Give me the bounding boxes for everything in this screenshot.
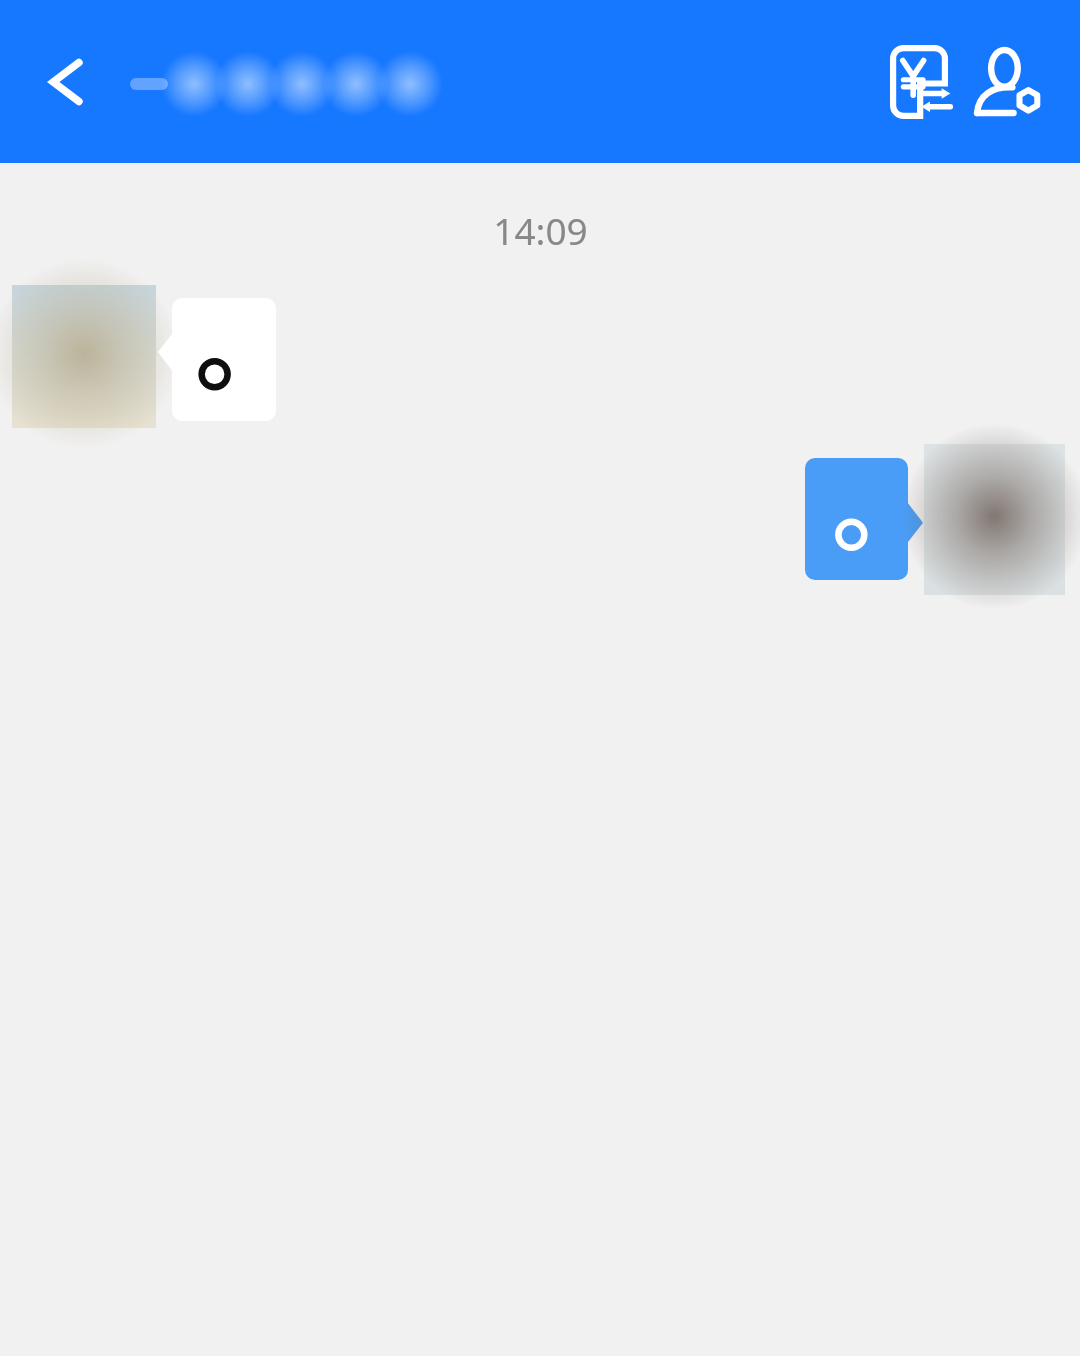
button[interactable]: Back [42,54,98,110]
button[interactable] [805,458,908,580]
button[interactable] [128,50,874,114]
staticText: 14:09 [493,205,588,255]
button[interactable] [172,298,276,421]
button[interactable]: Transfer money [874,37,964,127]
button[interactable]: Contact settings [964,37,1054,127]
